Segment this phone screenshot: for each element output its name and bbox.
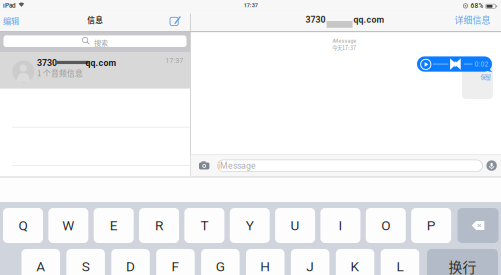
button[interactable]: D — [111, 249, 150, 275]
staticText: D — [126, 258, 135, 274]
button[interactable]: Y — [230, 208, 270, 243]
button[interactable]: U — [275, 208, 315, 243]
button[interactable]: P — [411, 208, 451, 243]
button[interactable]: T — [184, 208, 224, 243]
button[interactable]: H — [246, 249, 284, 275]
staticText: 搜索 — [94, 37, 108, 48]
staticText: K — [351, 258, 360, 274]
button[interactable]: 搜索 — [3, 35, 186, 47]
button[interactable]: A — [21, 249, 60, 275]
button[interactable]: F — [156, 249, 195, 275]
staticText: 68% — [471, 2, 484, 10]
button[interactable]: Q — [3, 208, 43, 243]
staticText: 3730 — [37, 58, 57, 68]
staticText: W — [62, 217, 74, 233]
button[interactable]: New Message — [167, 12, 184, 29]
staticText: P — [427, 217, 436, 233]
staticText: qq.com — [353, 15, 384, 25]
staticText: iPad — [3, 2, 16, 9]
staticText: 换行 — [448, 256, 476, 275]
button[interactable]: O — [366, 208, 406, 243]
staticText: R — [155, 217, 163, 233]
staticText: G — [216, 258, 225, 274]
button[interactable]: 3730 — [0, 52, 190, 89]
staticText: 3730 — [305, 15, 325, 25]
staticText: F — [171, 258, 179, 274]
staticText: H — [260, 258, 270, 274]
staticText: Y — [246, 217, 254, 233]
button[interactable]: 详细信息 — [452, 10, 494, 29]
button[interactable]: K — [336, 249, 374, 275]
button[interactable]: Delete — [457, 208, 498, 243]
staticText: 今天17:37 — [332, 44, 356, 51]
staticText: 17:37 — [165, 57, 183, 65]
staticText: T — [200, 217, 208, 233]
staticText: Q — [18, 217, 27, 233]
button[interactable]: Record audio — [483, 157, 500, 174]
staticText: 0:02 — [475, 60, 489, 68]
button[interactable]: G — [201, 249, 240, 275]
staticText: 1 个音频信息 — [37, 67, 83, 78]
button[interactable]: E — [94, 208, 134, 243]
staticText: 信息 — [87, 14, 103, 25]
staticText: 17:37 — [244, 2, 258, 9]
staticText: O — [381, 217, 390, 233]
staticText: 详细信息 — [455, 13, 491, 26]
staticText: L — [396, 258, 403, 274]
staticText: 编辑 — [3, 15, 19, 27]
staticText: S — [82, 258, 90, 274]
button[interactable]: R — [139, 208, 179, 243]
staticText: 保留 — [481, 73, 491, 81]
button[interactable]: I — [320, 208, 360, 243]
button[interactable]: L — [381, 249, 419, 275]
staticText: E — [110, 217, 118, 233]
button[interactable]: Camera — [196, 158, 212, 172]
staticText: J — [306, 258, 314, 274]
button[interactable]: 编辑 — [0, 12, 22, 30]
staticText: iMessage — [332, 38, 356, 44]
staticText: qq.com — [85, 58, 116, 68]
button[interactable]: J — [291, 249, 329, 275]
staticText: I — [338, 217, 342, 233]
button[interactable]: W — [48, 208, 88, 243]
button[interactable]: 换行 — [427, 249, 498, 275]
staticText: U — [291, 217, 300, 233]
staticText: A — [36, 258, 45, 274]
button[interactable]: S — [66, 249, 105, 275]
staticText: iMessage — [218, 161, 256, 171]
